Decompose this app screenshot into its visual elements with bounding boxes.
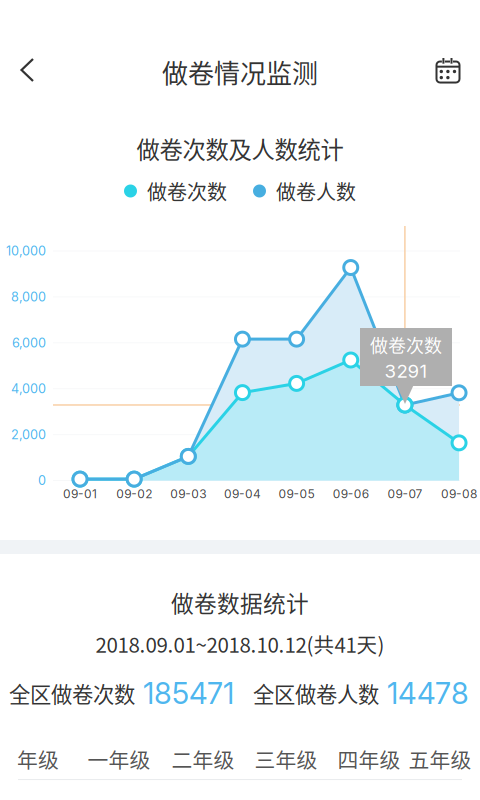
staticText: 全区做卷人数	[253, 678, 379, 709]
staticText: 09-01	[63, 487, 97, 501]
button[interactable]: Calendar	[421, 46, 471, 98]
staticText: 四年级	[337, 744, 400, 774]
button[interactable]: 年级	[2, 739, 74, 779]
staticText: 一年级	[87, 744, 150, 774]
staticText: 6,000	[12, 335, 46, 350]
staticText: 09-05	[279, 487, 315, 501]
staticText: 2,000	[11, 427, 46, 442]
staticText: 三年级	[254, 744, 317, 774]
staticText: 14478	[379, 676, 469, 711]
staticText: 年级	[17, 744, 59, 774]
staticText: 2018.09.01~2018.10.12(共41天)	[95, 629, 384, 658]
staticText: 做卷情况监测	[162, 53, 318, 91]
staticText: 全区做卷次数	[9, 678, 135, 709]
staticText: 做卷次数	[370, 332, 442, 358]
staticText: 09-06	[333, 487, 369, 501]
staticText: 做卷数据统计	[171, 586, 309, 619]
staticText: 做卷次数	[147, 176, 227, 205]
staticText: 做卷次数及人数统计	[136, 132, 343, 165]
staticText: 做卷人数	[276, 176, 356, 205]
button[interactable]: 一年级	[83, 739, 155, 779]
staticText: 09-04	[224, 487, 261, 501]
button[interactable]: 二年级	[167, 739, 239, 779]
staticText: 4,000	[11, 381, 46, 396]
button[interactable]: Back	[9, 46, 55, 98]
staticText: 0	[38, 473, 46, 488]
staticText: 二年级	[171, 744, 234, 774]
staticText: 09-08	[441, 487, 477, 501]
button[interactable]: 三年级	[250, 739, 322, 779]
staticText: 8,000	[11, 289, 46, 304]
staticText: 09-02	[116, 487, 152, 501]
staticText: 09-03	[170, 487, 206, 501]
staticText: 09-07	[387, 487, 422, 501]
button[interactable]: 四年级	[333, 739, 405, 779]
staticText: 3291	[384, 360, 427, 382]
button[interactable]: 五年级	[404, 739, 476, 779]
staticText: 五年级	[408, 744, 471, 774]
staticText: 10,000	[6, 243, 46, 259]
staticText: 185471	[135, 676, 234, 711]
